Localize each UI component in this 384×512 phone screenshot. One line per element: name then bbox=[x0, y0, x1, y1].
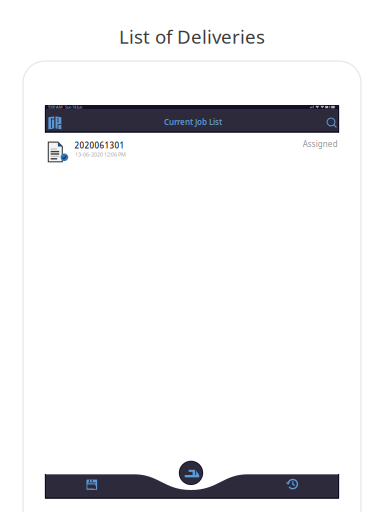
button[interactable]: Schedule bbox=[79, 472, 105, 496]
button[interactable]: Deliveries bbox=[178, 460, 204, 486]
button[interactable]: 2020061301 bbox=[45, 134, 339, 166]
staticText: 9:00 AM Sun 14 Jun bbox=[48, 104, 82, 110]
staticText: Current Job List bbox=[164, 117, 222, 127]
staticText: 2020061301 bbox=[74, 140, 124, 151]
button[interactable]: History bbox=[279, 472, 305, 496]
staticText: Assigned bbox=[303, 139, 338, 149]
button[interactable]: Menu bbox=[43, 111, 67, 134]
staticText: 13-06-2020 12:06 PM bbox=[75, 151, 126, 158]
staticText: List of Deliveries bbox=[119, 24, 265, 49]
button[interactable]: Search bbox=[320, 112, 344, 135]
